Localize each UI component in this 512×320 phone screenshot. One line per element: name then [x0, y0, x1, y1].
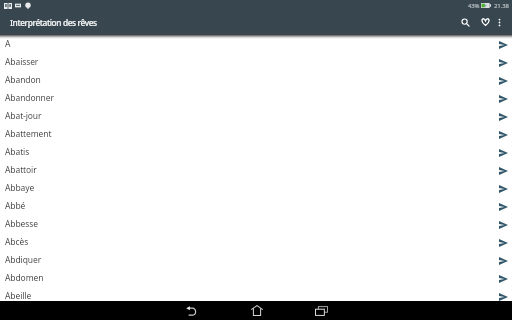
staticText: Abandonner: [5, 92, 503, 104]
staticText: Abcès: [5, 236, 503, 248]
button[interactable]: Abdiquer: [0, 251, 512, 269]
staticText: Abandon: [5, 74, 503, 86]
button[interactable]: Abandonner: [0, 89, 512, 107]
button[interactable]: A: [0, 35, 512, 53]
staticText: Abbaye: [5, 182, 503, 194]
button[interactable]: Abandon: [0, 71, 512, 89]
staticText: Interprétation des rêves: [10, 17, 97, 28]
staticText: Abatis: [5, 146, 503, 158]
button[interactable]: More options: [491, 12, 507, 32]
staticText: Abattement: [5, 128, 503, 140]
button[interactable]: Abat-jour: [0, 107, 512, 125]
button[interactable]: Abattement: [0, 125, 512, 143]
staticText: Abdiquer: [5, 254, 503, 266]
button[interactable]: Abeille: [0, 287, 512, 305]
button[interactable]: Recents: [289, 301, 354, 320]
staticText: Abaisser: [5, 56, 503, 68]
button[interactable]: Home: [224, 301, 289, 320]
staticText: Abbesse: [5, 218, 503, 230]
button[interactable]: Abaisser: [0, 53, 512, 71]
button[interactable]: Abcès: [0, 233, 512, 251]
button[interactable]: Abbesse: [0, 215, 512, 233]
staticText: Abeille: [5, 290, 503, 302]
staticText: 21.38: [494, 2, 509, 10]
button[interactable]: Favorites: [475, 12, 495, 32]
button[interactable]: Abatis: [0, 143, 512, 161]
button[interactable]: Abbé: [0, 197, 512, 215]
staticText: Abattoir: [5, 164, 503, 176]
button[interactable]: Back: [159, 301, 224, 320]
button[interactable]: Abattoir: [0, 161, 512, 179]
staticText: Abbé: [5, 200, 503, 212]
staticText: A: [5, 38, 503, 50]
button[interactable]: Search: [455, 12, 476, 32]
button[interactable]: Abbaye: [0, 179, 512, 197]
staticText: 43%: [468, 2, 480, 10]
staticText: Abdomen: [5, 272, 503, 284]
staticText: Abat-jour: [5, 110, 503, 122]
button[interactable]: Abdomen: [0, 269, 512, 287]
